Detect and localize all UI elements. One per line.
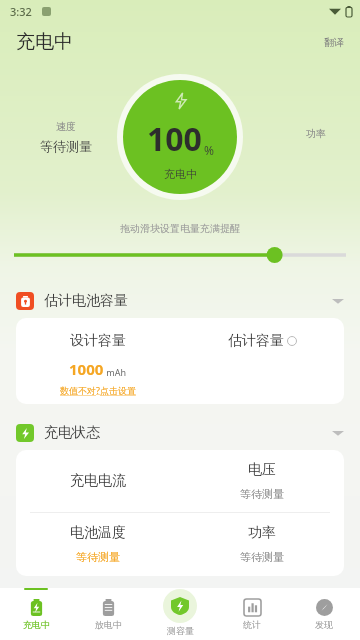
button[interactable] xyxy=(0,244,360,266)
button[interactable]: 估计电池容量 xyxy=(0,284,360,318)
staticText: 等待测量 xyxy=(40,138,92,154)
button[interactable]: 电压 xyxy=(180,450,344,512)
staticText: 电压 xyxy=(248,461,276,479)
staticText: 统计 xyxy=(243,619,261,630)
other: 统计 xyxy=(244,599,261,616)
staticText: 等待测量 xyxy=(240,550,284,564)
other: 测容量 xyxy=(171,597,189,615)
staticText: 电池温度 xyxy=(70,524,126,542)
staticText: 设计容量 xyxy=(70,332,126,350)
button[interactable]: 充电电流 xyxy=(16,450,344,576)
button[interactable]: 设计容量 xyxy=(16,318,344,404)
staticText: 充电中 xyxy=(23,619,50,630)
staticText: 充电中 xyxy=(16,30,73,54)
staticText: 速度 xyxy=(56,120,76,133)
staticText: 功率 xyxy=(248,524,276,542)
button[interactable]: 翻译 xyxy=(320,32,348,53)
other: 放电中 xyxy=(100,599,117,616)
staticText: 翻译 xyxy=(324,36,344,49)
button[interactable]: 数值不对?点击设置 xyxy=(60,384,136,396)
staticText: 数值不对?点击设置 xyxy=(60,384,136,396)
button[interactable]: 充电电流 xyxy=(16,450,180,512)
staticText: 功率 xyxy=(306,127,326,140)
staticText: 估计电池容量 xyxy=(44,292,128,310)
button[interactable]: 发现 xyxy=(288,588,360,640)
staticText: 等待测量 xyxy=(76,550,120,564)
button[interactable]: 测容量 xyxy=(144,589,216,640)
staticText: 充电中 xyxy=(164,167,197,181)
button[interactable]: 功率 xyxy=(180,513,344,575)
button[interactable]: 充电状态 xyxy=(0,416,360,450)
staticText: 发现 xyxy=(315,619,333,630)
other: 帮助 xyxy=(287,336,297,346)
other: 发现 xyxy=(316,599,333,616)
staticText: mAh xyxy=(104,366,127,378)
button[interactable]: 电池温度 xyxy=(16,513,180,575)
button[interactable]: 统计 xyxy=(216,588,288,640)
staticText: 充电状态 xyxy=(44,424,100,442)
staticText: 1000 xyxy=(69,359,104,379)
other: 充电中 xyxy=(28,599,45,616)
button[interactable]: 充电中 xyxy=(0,588,72,640)
staticText: 测容量 xyxy=(167,625,194,636)
staticText: 充电电流 xyxy=(70,472,126,490)
staticText: 3:32 xyxy=(10,4,32,19)
staticText: 100 xyxy=(147,117,202,161)
staticText: 等待测量 xyxy=(240,487,284,501)
staticText: % xyxy=(204,142,214,158)
staticText: 放电中 xyxy=(95,619,122,630)
staticText: 估计容量 xyxy=(228,332,284,350)
button[interactable]: 放电中 xyxy=(72,588,144,640)
staticText: 拖动滑块设置电量充满提醒 xyxy=(120,222,240,235)
